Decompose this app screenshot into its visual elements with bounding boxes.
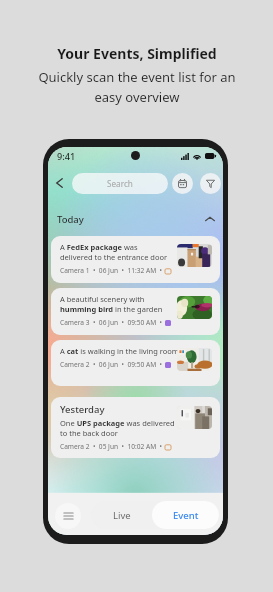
button[interactable]: Menu — [55, 503, 81, 529]
button[interactable]: Filter — [200, 173, 221, 194]
staticText: A FedEx package was — [60, 242, 138, 252]
staticText: Camera 3 • 06 Jun • 09:50 AM • — [60, 318, 163, 327]
staticText: Live — [113, 509, 131, 522]
staticText: humming bird in the garden — [60, 304, 163, 314]
staticText: Camera 2 • 06 Jun • 09:50 AM • — [60, 360, 163, 369]
staticText: Your Events, Simplified — [57, 44, 217, 63]
staticText: Event — [173, 509, 199, 522]
staticText: 9:41 — [57, 150, 76, 163]
staticText: Today — [57, 213, 84, 226]
button[interactable]: Search — [72, 173, 168, 194]
button[interactable]: Yesterday — [51, 397, 220, 458]
staticText: Search — [107, 178, 133, 189]
button[interactable]: Calendar — [172, 173, 193, 194]
staticText: A beautiful scenery with — [60, 294, 145, 304]
staticText: One UPS package was delivered — [60, 418, 175, 428]
button[interactable]: A FedEx package was — [51, 236, 220, 283]
staticText: Camera 2 • 05 Jun • 10:02 AM • — [60, 442, 163, 451]
staticText: Yesterday — [60, 403, 105, 416]
button[interactable]: Today — [57, 211, 215, 227]
button[interactable]: Live — [91, 501, 153, 529]
staticText: delivered to the entrance door — [60, 252, 168, 262]
button[interactable]: A beautiful scenery with — [51, 288, 220, 335]
staticText: Camera 1 • 06 Jun • 11:32 AM • — [60, 266, 163, 275]
staticText: Quickly scan the event list for an easy … — [23, 68, 251, 106]
button[interactable]: Back — [51, 174, 68, 191]
button[interactable]: A cat is walking in the living room — [51, 340, 220, 386]
staticText: to the back door — [60, 428, 118, 438]
button[interactable]: Event — [152, 501, 219, 529]
staticText: A cat is walking in the living room — [60, 346, 179, 356]
